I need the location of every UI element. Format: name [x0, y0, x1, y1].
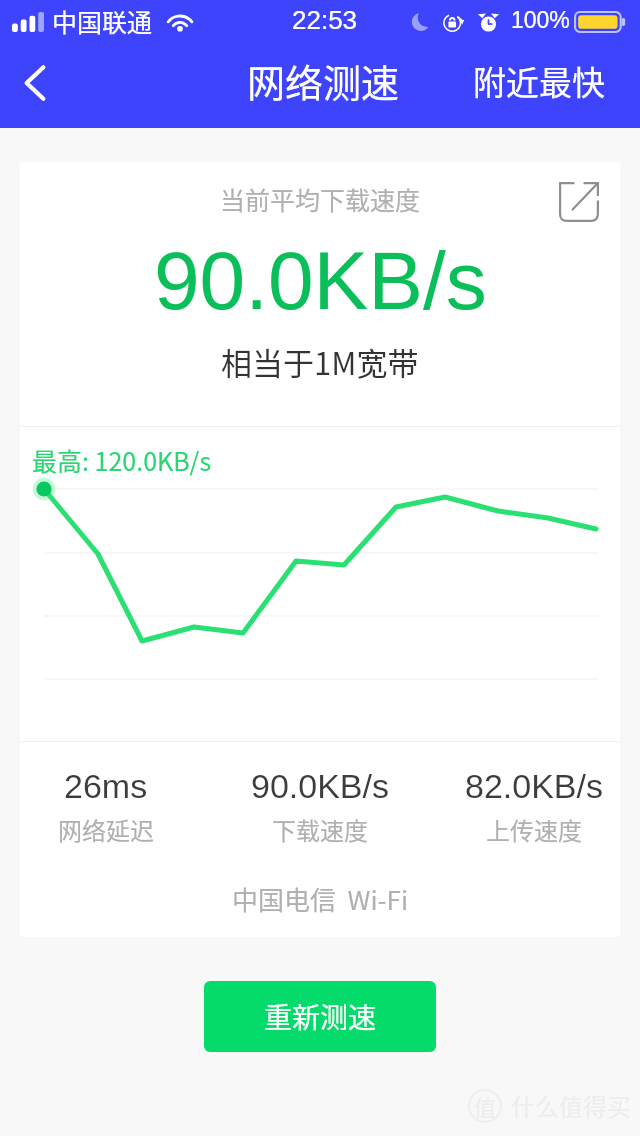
- staticText: 82.0KB/s: [465, 767, 603, 805]
- staticText: 中国电信 Wi-Fi: [20, 880, 620, 918]
- staticText: 最高: 120.0KB/s: [32, 442, 212, 478]
- staticText: 22:53: [292, 5, 358, 34]
- staticText: 中国联通: [52, 3, 153, 39]
- staticText: 当前平均下载速度: [220, 181, 421, 217]
- staticText: 相当于1M宽带: [221, 339, 419, 384]
- staticText: 值: [474, 1090, 497, 1122]
- staticText: 附近最快: [473, 57, 605, 105]
- staticText: 90.0KB/s: [154, 235, 487, 327]
- staticText: 下载速度: [272, 812, 368, 847]
- button[interactable]: 重新测速: [204, 981, 436, 1052]
- button[interactable]: Share: [546, 169, 612, 235]
- staticText: 90.0KB/s: [251, 767, 389, 805]
- staticText: 26ms: [64, 767, 148, 805]
- staticText: 上传速度: [486, 812, 582, 847]
- staticText: 网络延迟: [58, 812, 154, 847]
- button[interactable]: Back: [1, 49, 69, 117]
- staticText: 什么值得买: [511, 1088, 631, 1123]
- staticText: 100%: [511, 7, 570, 33]
- staticText: 重新测速: [264, 996, 377, 1037]
- button[interactable]: 附近最快: [461, 45, 617, 117]
- staticText: 网络测速: [247, 53, 400, 108]
